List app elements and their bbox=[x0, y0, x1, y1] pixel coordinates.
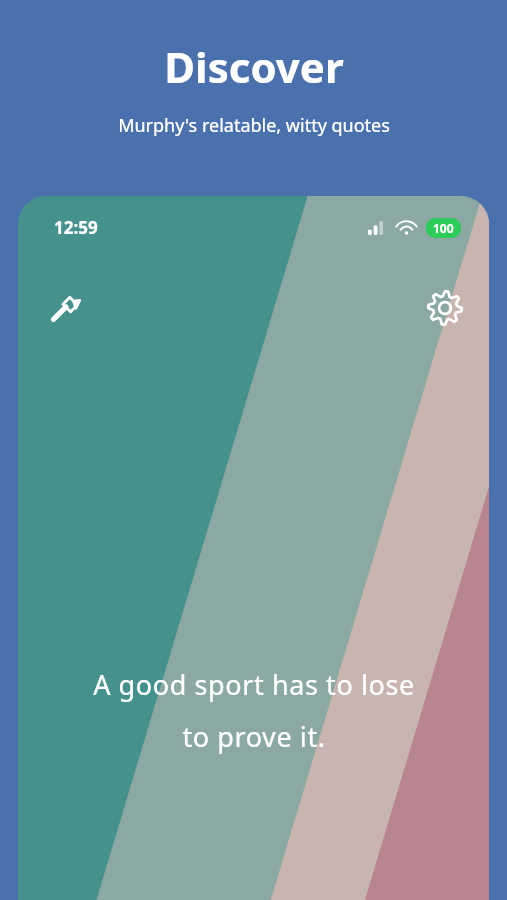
button[interactable]: A good sport has to lose to prove it. bbox=[46, 666, 461, 755]
staticText: Murphy's relatable, witty quotes bbox=[118, 113, 390, 138]
staticText: Discover bbox=[164, 38, 344, 95]
staticText: 100 bbox=[433, 220, 454, 236]
staticText: 12:59 bbox=[54, 216, 98, 239]
staticText: A good sport has to lose to prove it. bbox=[93, 666, 415, 755]
button[interactable]: Settings bbox=[417, 280, 473, 336]
button[interactable]: Change theme bbox=[38, 280, 94, 336]
